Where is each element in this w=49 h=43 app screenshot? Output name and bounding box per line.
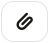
button[interactable]: Attach file (1, 1, 47, 41)
